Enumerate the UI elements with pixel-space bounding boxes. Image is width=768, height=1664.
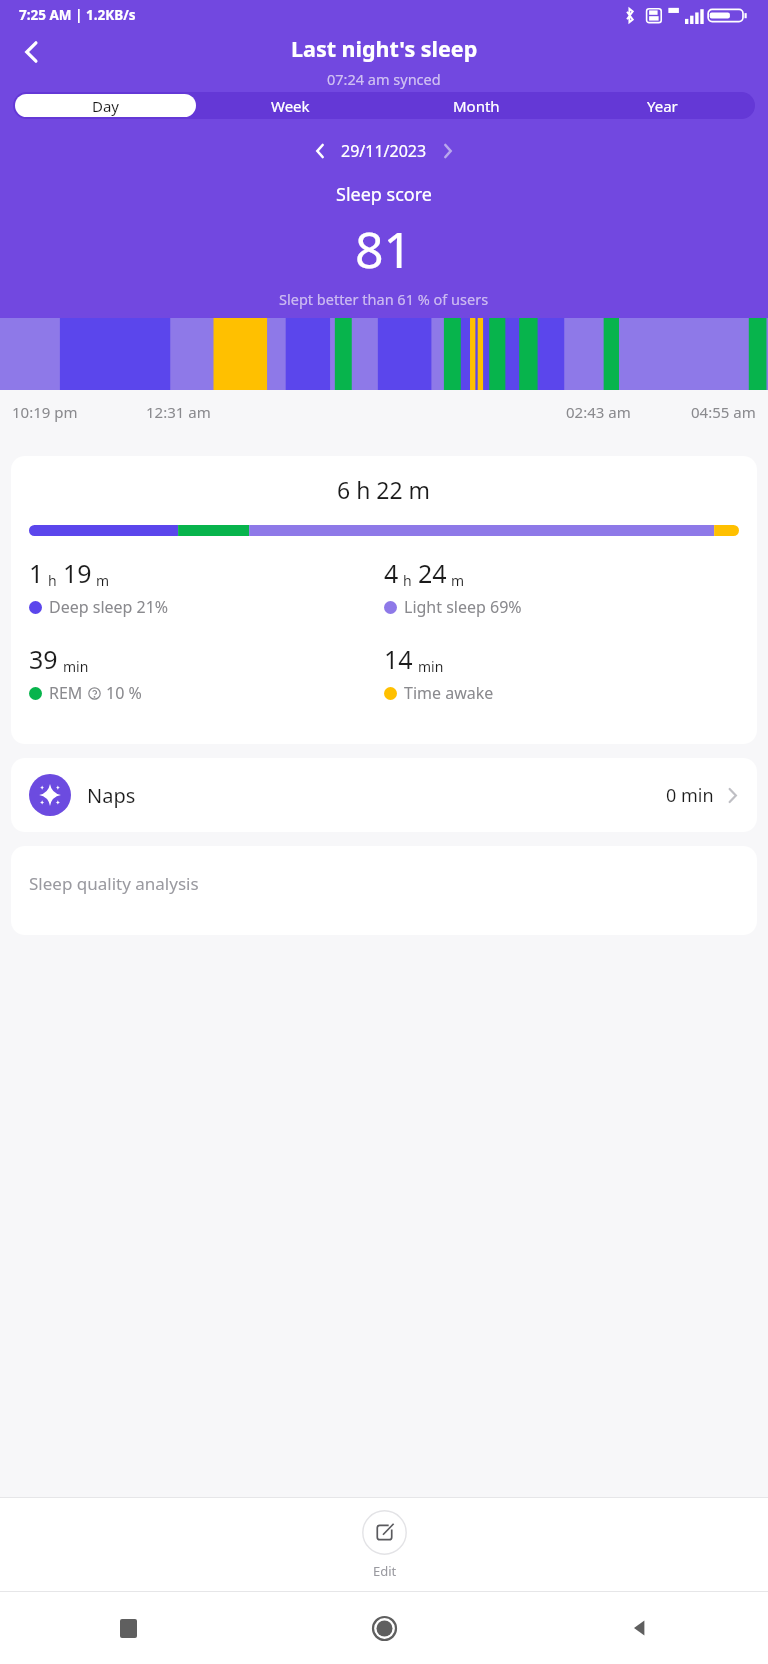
staticText: REM bbox=[49, 682, 83, 704]
staticText: 07:24 am synced bbox=[327, 69, 441, 89]
staticText: 39 bbox=[29, 642, 58, 676]
button[interactable]: Previous day bbox=[305, 136, 335, 166]
staticText: Naps bbox=[87, 782, 136, 809]
button[interactable]: Next day bbox=[433, 136, 463, 166]
staticText: 81 bbox=[355, 215, 413, 283]
staticText: 7:25 AM | 1.2KB/s bbox=[19, 6, 136, 24]
staticText: m bbox=[96, 571, 110, 590]
button[interactable]: 6 h 22 m bbox=[11, 456, 757, 744]
staticText: h bbox=[403, 571, 412, 590]
staticText: Edit bbox=[373, 1562, 397, 1580]
button[interactable]: Sleep quality analysis bbox=[11, 846, 757, 935]
staticText: 10 % bbox=[106, 682, 142, 704]
staticText: 12:31 am bbox=[146, 402, 211, 422]
staticText: 4 bbox=[384, 556, 399, 590]
staticText: 04:55 am bbox=[691, 402, 756, 422]
staticText: m bbox=[451, 571, 465, 590]
staticText: h bbox=[48, 571, 57, 590]
button[interactable]: Edit bbox=[336, 1506, 433, 1584]
staticText: Time awake bbox=[404, 682, 494, 704]
staticText: 19 bbox=[63, 556, 92, 590]
staticText: min bbox=[418, 657, 444, 676]
staticText: 6 h 22 m bbox=[337, 474, 431, 505]
button[interactable]: Back bbox=[8, 28, 56, 76]
staticText: 29/11/2023 bbox=[341, 140, 427, 162]
button[interactable]: Month bbox=[385, 94, 567, 117]
button[interactable]: Naps bbox=[11, 758, 757, 832]
staticText: 1 bbox=[29, 556, 44, 590]
staticText: 10:19 pm bbox=[12, 402, 78, 422]
staticText: 02:43 am bbox=[566, 402, 631, 422]
staticText: Sleep score bbox=[336, 182, 432, 207]
button[interactable]: Home bbox=[256, 1592, 512, 1664]
staticText: Day bbox=[92, 96, 120, 116]
staticText: Slept better than 61 % of users bbox=[279, 289, 489, 309]
staticText: min bbox=[63, 657, 89, 676]
button[interactable]: Back bbox=[512, 1592, 768, 1664]
staticText: Week bbox=[271, 96, 310, 116]
staticText: 24 bbox=[418, 556, 447, 590]
staticText: Last night's sleep bbox=[291, 34, 478, 63]
staticText: Light sleep 69% bbox=[404, 596, 522, 618]
staticText: Year bbox=[647, 96, 678, 116]
button[interactable]: Day bbox=[15, 94, 196, 117]
staticText: 0 min bbox=[666, 783, 714, 808]
button[interactable]: Recent apps bbox=[0, 1592, 256, 1664]
staticText: 14 bbox=[384, 642, 413, 676]
staticText: Month bbox=[453, 96, 500, 116]
staticText: Deep sleep 21% bbox=[49, 596, 169, 618]
button[interactable]: Week bbox=[200, 94, 381, 117]
staticText: Sleep quality analysis bbox=[29, 872, 199, 895]
button[interactable]: Year bbox=[571, 94, 753, 117]
